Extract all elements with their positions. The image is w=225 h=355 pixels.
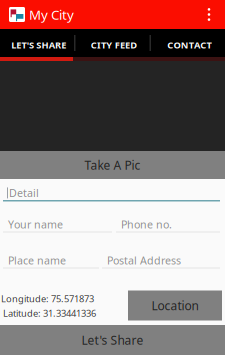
staticText: Detail	[9, 186, 39, 200]
staticText: Longitude: 75.571873	[1, 292, 94, 305]
button[interactable]: Location	[128, 290, 222, 320]
button[interactable]: CONTACT	[151, 29, 225, 57]
staticText: CITY FEED	[91, 39, 137, 51]
button[interactable]: More options	[197, 8, 225, 21]
button[interactable]: Take A Pic	[0, 151, 225, 179]
staticText: Latitude: 31.33441336	[1, 307, 96, 319]
staticText: My City	[29, 6, 74, 23]
button[interactable]: LET'S SHARE	[0, 29, 74, 57]
staticText: Place name	[8, 253, 66, 267]
staticText: LET'S SHARE	[11, 39, 66, 51]
staticText: Let's Share	[81, 332, 143, 348]
staticText: Your name	[8, 217, 63, 231]
button[interactable]: Let's Share	[0, 325, 225, 355]
staticText: Take A Pic	[84, 157, 140, 173]
staticText: Phone no.	[121, 217, 172, 231]
staticText: Postal Address	[107, 253, 181, 267]
staticText: Location	[151, 297, 198, 313]
staticText: CONTACT	[167, 39, 211, 51]
button[interactable]: CITY FEED	[75, 29, 150, 57]
